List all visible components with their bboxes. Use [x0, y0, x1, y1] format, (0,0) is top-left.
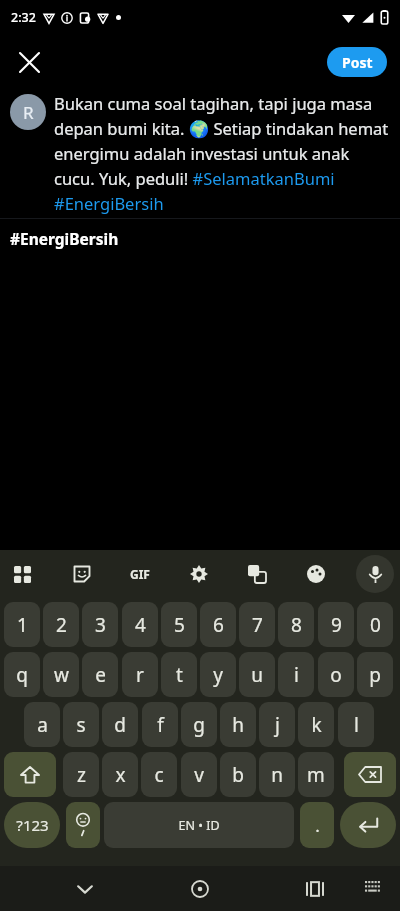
button[interactable]: q	[4, 652, 40, 697]
staticText: t	[176, 662, 183, 688]
button[interactable]: Translate	[238, 555, 276, 593]
staticText: 2:32	[11, 9, 36, 26]
button[interactable]: Shift	[4, 752, 56, 797]
button[interactable]: 5	[161, 602, 197, 647]
staticText: 4	[135, 612, 146, 638]
staticText: l	[354, 712, 359, 738]
button[interactable]: e	[82, 652, 118, 697]
button[interactable]: ?123	[4, 802, 60, 848]
button[interactable]: Settings	[180, 555, 218, 593]
button[interactable]: EN • ID	[104, 802, 294, 848]
staticText: 2	[56, 612, 67, 638]
button[interactable]: .	[300, 802, 334, 848]
staticText: GIF	[130, 566, 150, 582]
staticText: 5	[174, 612, 185, 638]
staticText: .	[315, 814, 320, 837]
button[interactable]: Emoji	[66, 802, 100, 848]
button[interactable]: 2	[43, 602, 79, 647]
button[interactable]: GIF	[121, 555, 159, 593]
staticText: h	[232, 712, 244, 738]
button[interactable]: w	[43, 652, 79, 697]
button[interactable]: h	[220, 702, 256, 747]
staticText: s	[76, 712, 86, 738]
button[interactable]: p	[357, 652, 393, 697]
staticText: y	[213, 662, 223, 688]
button[interactable]: g	[181, 702, 217, 747]
button[interactable]: Close	[8, 41, 50, 83]
button[interactable]: z	[63, 752, 99, 797]
staticText: c	[154, 762, 164, 788]
staticText: p	[369, 662, 381, 688]
button[interactable]: c	[141, 752, 177, 797]
button[interactable]: Hide keyboard	[67, 871, 103, 907]
staticText: q	[16, 662, 28, 688]
button[interactable]: j	[259, 702, 295, 747]
button[interactable]: Home	[182, 871, 218, 907]
button[interactable]: Voice input	[356, 555, 394, 593]
button[interactable]: f	[142, 702, 178, 747]
staticText: k	[311, 712, 322, 738]
staticText: EN • ID	[178, 817, 220, 834]
staticText: g	[193, 712, 205, 738]
staticText: v	[194, 762, 204, 788]
button[interactable]: m	[298, 752, 334, 797]
staticText: w	[54, 662, 69, 688]
staticText: e	[95, 662, 106, 688]
button[interactable]: u	[239, 652, 275, 697]
staticText: Post	[342, 53, 373, 72]
staticText: 8	[291, 612, 302, 638]
button[interactable]: Stickers	[63, 555, 101, 593]
button[interactable]: t	[161, 652, 197, 697]
button[interactable]: Backspace	[344, 752, 396, 797]
button[interactable]: i	[278, 652, 314, 697]
button[interactable]: a	[24, 702, 60, 747]
staticText: x	[115, 762, 126, 788]
button[interactable]: Enter	[340, 802, 396, 848]
staticText: Bukan cuma soal tagihan, tapi juga masa …	[54, 92, 394, 214]
button[interactable]: 3	[82, 602, 118, 647]
staticText: m	[307, 762, 325, 788]
staticText: i	[294, 662, 299, 688]
staticText: z	[77, 762, 86, 788]
button[interactable]: Post	[327, 47, 387, 77]
staticText: 1	[17, 612, 28, 638]
button[interactable]: v	[181, 752, 217, 797]
button[interactable]: 9	[318, 602, 354, 647]
staticText: 0	[370, 612, 381, 638]
button[interactable]: Themes	[297, 555, 335, 593]
staticText: ?123	[16, 815, 49, 835]
button[interactable]: o	[318, 652, 354, 697]
staticText: d	[114, 712, 126, 738]
button[interactable]: 8	[278, 602, 314, 647]
staticText: a	[37, 712, 48, 738]
button[interactable]: 6	[200, 602, 236, 647]
button[interactable]: b	[220, 752, 256, 797]
button[interactable]: d	[102, 702, 138, 747]
button[interactable]: 1	[4, 602, 40, 647]
button[interactable]: k	[298, 702, 334, 747]
button[interactable]: x	[102, 752, 138, 797]
button[interactable]: 0	[357, 602, 393, 647]
staticText: #EnergiBersih	[10, 228, 119, 249]
button[interactable]: n	[259, 752, 295, 797]
button[interactable]: y	[200, 652, 236, 697]
staticText: b	[232, 762, 244, 788]
button[interactable]: s	[63, 702, 99, 747]
button[interactable]: 4	[122, 602, 158, 647]
button[interactable]: R	[10, 94, 46, 130]
staticText: 3	[95, 612, 106, 638]
button[interactable]: r	[122, 652, 158, 697]
staticText: R	[23, 101, 34, 124]
button[interactable]: Apps	[3, 555, 41, 593]
staticText: 6	[213, 612, 224, 638]
staticText: u	[251, 662, 263, 688]
staticText: f	[157, 712, 164, 738]
staticText: r	[136, 662, 144, 688]
button[interactable]: 7	[239, 602, 275, 647]
staticText: n	[271, 762, 283, 788]
staticText: 7	[252, 612, 263, 638]
button[interactable]: Recent apps	[297, 871, 333, 907]
button[interactable]: l	[338, 702, 374, 747]
button[interactable]: Switch keyboard	[355, 871, 391, 907]
staticText: 9	[331, 612, 342, 638]
